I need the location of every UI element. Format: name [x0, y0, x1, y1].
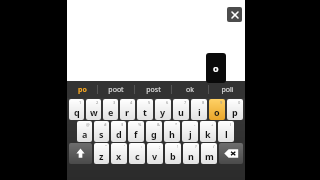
staticText: + — [211, 122, 214, 127]
button[interactable]: ! — [165, 143, 181, 164]
staticText: o — [214, 106, 220, 118]
staticText: x — [116, 150, 122, 162]
staticText: 2 — [96, 100, 99, 105]
staticText: ( — [230, 122, 232, 127]
staticText: z — [99, 150, 104, 162]
staticText: post — [146, 85, 161, 95]
staticText: k — [205, 128, 211, 140]
staticText: y — [160, 106, 166, 118]
staticText: # — [104, 122, 107, 127]
staticText: p — [232, 106, 238, 118]
button[interactable]: # — [94, 121, 109, 142]
staticText: 1 — [79, 100, 82, 105]
button[interactable]: * — [164, 121, 180, 142]
staticText: 4 — [130, 100, 133, 105]
button[interactable]: 0 — [227, 99, 243, 120]
staticText: s — [99, 128, 104, 140]
staticText: h — [169, 128, 175, 140]
button[interactable]: / — [201, 143, 217, 164]
staticText: u — [178, 106, 184, 118]
staticText: m — [205, 150, 214, 162]
button[interactable]: 3 — [103, 99, 118, 120]
staticText: n — [188, 150, 194, 162]
button[interactable]: poot — [98, 81, 134, 98]
staticText: ' — [124, 144, 125, 149]
staticText: v — [152, 150, 158, 162]
staticText: 3 — [113, 100, 116, 105]
staticText: poli — [221, 85, 234, 95]
button[interactable]: Backspace — [219, 143, 243, 164]
button[interactable]: $ — [111, 121, 126, 142]
button[interactable]: poli — [209, 81, 245, 98]
staticText: * — [175, 122, 178, 127]
staticText: e — [108, 106, 114, 118]
button[interactable]: 9 — [209, 99, 225, 120]
staticText: : — [141, 144, 143, 149]
staticText: w — [90, 106, 98, 118]
staticText: j — [189, 128, 192, 140]
staticText: 8 — [202, 100, 205, 105]
button[interactable]: post — [135, 81, 171, 98]
button[interactable]: po — [67, 81, 97, 98]
staticText: 6 — [166, 100, 169, 105]
staticText: - — [194, 122, 196, 127]
staticText: ! — [177, 144, 179, 149]
button[interactable]: 6 — [155, 99, 171, 120]
staticText: 0 — [238, 100, 241, 105]
staticText: $ — [121, 122, 124, 127]
staticText: c — [135, 150, 140, 162]
staticText: @ — [86, 122, 90, 127]
staticText: g — [151, 128, 157, 140]
button[interactable]: % — [128, 121, 144, 142]
staticText: 9 — [220, 100, 223, 105]
staticText: " — [105, 144, 107, 149]
staticText: i — [198, 106, 201, 118]
staticText: r — [125, 106, 130, 118]
button[interactable]: 5 — [137, 99, 153, 120]
staticText: 5 — [148, 100, 151, 105]
button[interactable]: : — [129, 143, 145, 164]
button[interactable]: Shift — [69, 143, 92, 164]
button[interactable]: ' — [111, 143, 127, 164]
staticText: ; — [159, 144, 161, 149]
staticText: t — [143, 106, 147, 118]
staticText: b — [170, 150, 176, 162]
button[interactable]: ( — [218, 121, 234, 142]
button[interactable]: ok — [172, 81, 208, 98]
button[interactable]: + — [200, 121, 216, 142]
staticText: l — [225, 128, 228, 140]
staticText: o — [213, 62, 219, 74]
button[interactable]: 8 — [191, 99, 207, 120]
button[interactable]: ; — [147, 143, 163, 164]
button[interactable]: 2 — [86, 99, 101, 120]
staticText: & — [157, 122, 160, 127]
staticText: 7 — [184, 100, 187, 105]
staticText: ok — [186, 85, 194, 95]
staticText: q — [74, 106, 80, 118]
button[interactable]: Close — [227, 7, 242, 22]
button[interactable]: 1 — [69, 99, 84, 120]
button[interactable]: @ — [77, 121, 92, 142]
button[interactable]: & — [146, 121, 162, 142]
staticText: d — [116, 128, 122, 140]
staticText: ? — [195, 144, 197, 149]
staticText: poot — [108, 85, 124, 95]
button[interactable]: 4 — [120, 99, 135, 120]
button[interactable]: 7 — [173, 99, 189, 120]
staticText: % — [138, 122, 142, 127]
staticText: a — [82, 128, 88, 140]
button[interactable]: " — [94, 143, 109, 164]
staticText: f — [134, 128, 138, 140]
button[interactable]: - — [182, 121, 198, 142]
button[interactable]: ? — [183, 143, 199, 164]
staticText: po — [78, 85, 87, 95]
staticText: / — [213, 144, 215, 149]
